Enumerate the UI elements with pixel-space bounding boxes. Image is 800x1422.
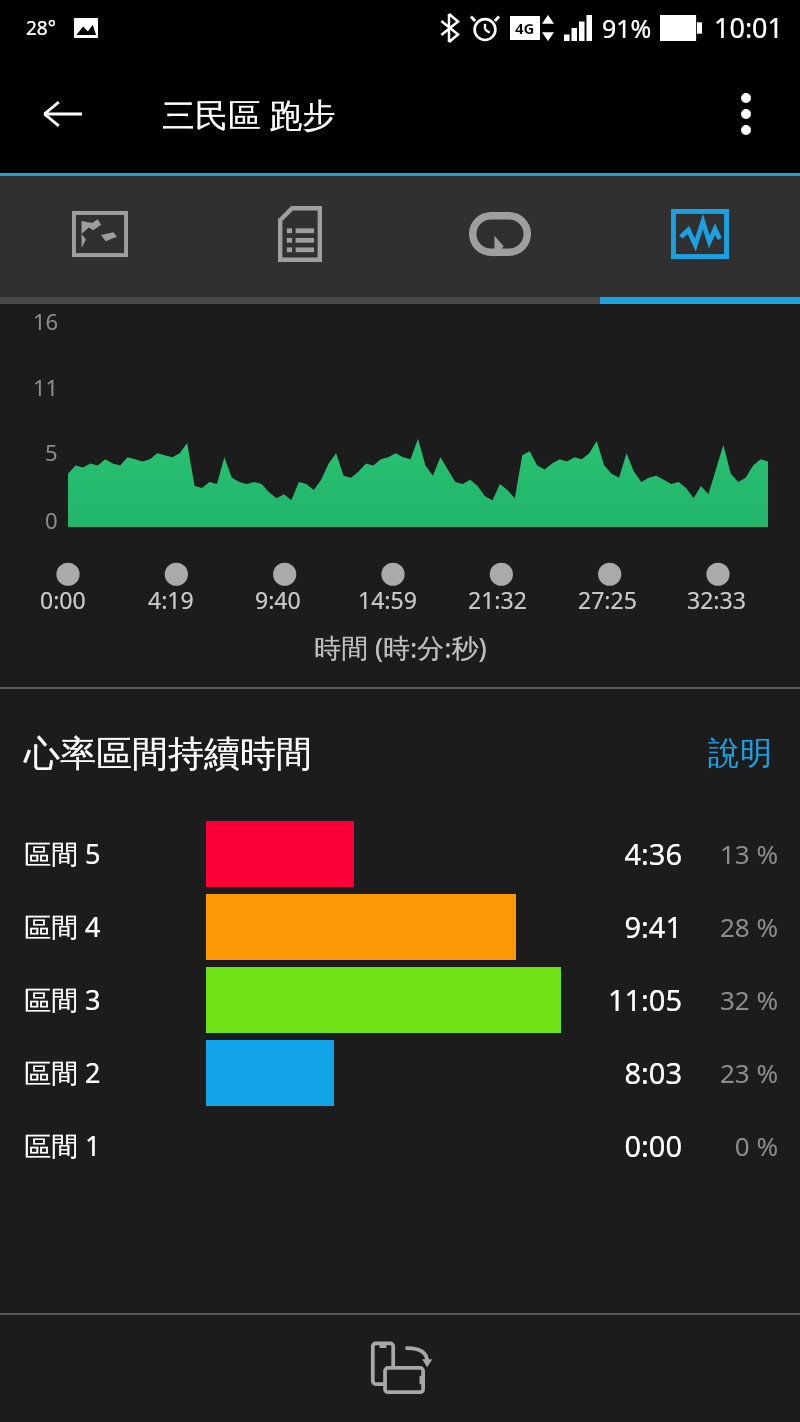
button[interactable]: Charts	[600, 176, 800, 304]
staticText: 0 %	[690, 1128, 778, 1163]
staticText: 4:19	[148, 584, 194, 615]
button[interactable]: Details	[200, 176, 400, 304]
staticText: 28 %	[690, 909, 778, 944]
staticText: 4G	[515, 18, 535, 38]
staticText: 9:40	[255, 584, 301, 615]
button[interactable]: Laps	[400, 176, 600, 304]
staticText: 32:33	[687, 584, 746, 615]
other: Details	[278, 206, 322, 262]
other: Laps	[469, 212, 531, 256]
staticText: 三民區 跑步	[162, 92, 336, 137]
staticText: 21:32	[468, 584, 527, 615]
other: Charts	[671, 209, 729, 259]
staticText: 16	[33, 306, 59, 336]
staticText: 23 %	[690, 1055, 778, 1090]
staticText: 11:05	[560, 980, 682, 1019]
staticText: 9:41	[560, 907, 682, 946]
staticText: 10:01	[714, 9, 784, 46]
staticText: 27:25	[578, 584, 637, 615]
staticText: 14:59	[358, 584, 417, 615]
staticText: 91%	[602, 11, 652, 45]
staticText: 區間 1	[24, 1127, 101, 1164]
staticText: 說明	[708, 733, 772, 773]
button[interactable]: Back	[26, 78, 98, 150]
button[interactable]: 區間 2	[0, 1036, 800, 1109]
staticText: 時間 (時:分:秒)	[314, 629, 487, 666]
staticText: 心率區間持續時間	[24, 731, 312, 776]
staticText: 區間 4	[24, 908, 101, 945]
other: Map	[72, 211, 128, 257]
staticText: 區間 5	[24, 835, 101, 872]
button[interactable]: Rotate screen	[352, 1321, 448, 1417]
button[interactable]: More options	[710, 78, 782, 150]
staticText: 28°	[26, 15, 56, 41]
staticText: 13 %	[690, 836, 778, 871]
button[interactable]: 區間 5	[0, 817, 800, 890]
staticText: 0	[45, 505, 58, 535]
staticText: 區間 2	[24, 1054, 101, 1091]
staticText: 區間 3	[24, 981, 101, 1018]
button[interactable]: 說明	[702, 725, 778, 781]
staticText: 0:00	[560, 1126, 682, 1165]
staticText: 8:03	[560, 1053, 682, 1092]
button[interactable]: 區間 4	[0, 890, 800, 963]
staticText: 4:36	[560, 834, 682, 873]
staticText: 11	[33, 372, 59, 402]
staticText: 0:00	[40, 584, 86, 615]
staticText: 32 %	[690, 982, 778, 1017]
staticText: 5	[45, 437, 58, 467]
button[interactable]: Map	[0, 176, 200, 304]
button[interactable]: 區間 1	[0, 1109, 800, 1182]
button[interactable]: 區間 3	[0, 963, 800, 1036]
